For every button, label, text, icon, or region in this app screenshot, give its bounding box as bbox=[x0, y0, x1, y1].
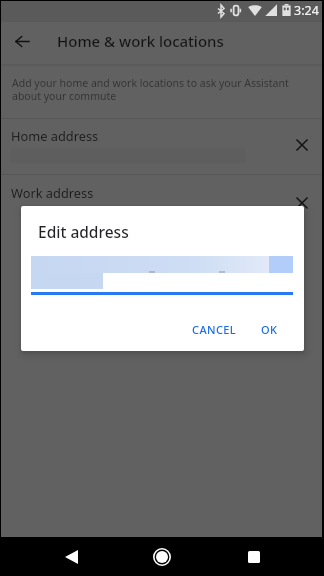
staticText: CANCEL bbox=[192, 322, 237, 337]
staticText: Home & work locations bbox=[57, 31, 224, 51]
button[interactable]: Home bbox=[149, 544, 175, 570]
button[interactable]: Remove work address bbox=[288, 189, 316, 217]
button[interactable]: Back bbox=[10, 29, 34, 53]
staticText: 3:24 bbox=[294, 2, 319, 19]
staticText: OK bbox=[261, 322, 278, 337]
button[interactable]: Home address bbox=[0, 119, 324, 174]
button[interactable]: CANCEL bbox=[185, 316, 243, 342]
staticText: Edit address bbox=[38, 221, 129, 242]
button[interactable]: Recent apps bbox=[242, 545, 266, 569]
staticText: Home address bbox=[11, 127, 99, 144]
button[interactable]: Back bbox=[59, 545, 83, 569]
button[interactable]: Remove home address bbox=[288, 131, 316, 159]
staticText: Add your home and work locations to ask … bbox=[12, 76, 289, 90]
button[interactable]: Work address bbox=[0, 175, 324, 230]
button[interactable]: OK bbox=[253, 316, 285, 342]
staticText: Work address bbox=[11, 184, 94, 201]
staticText: about your commute bbox=[12, 89, 117, 103]
